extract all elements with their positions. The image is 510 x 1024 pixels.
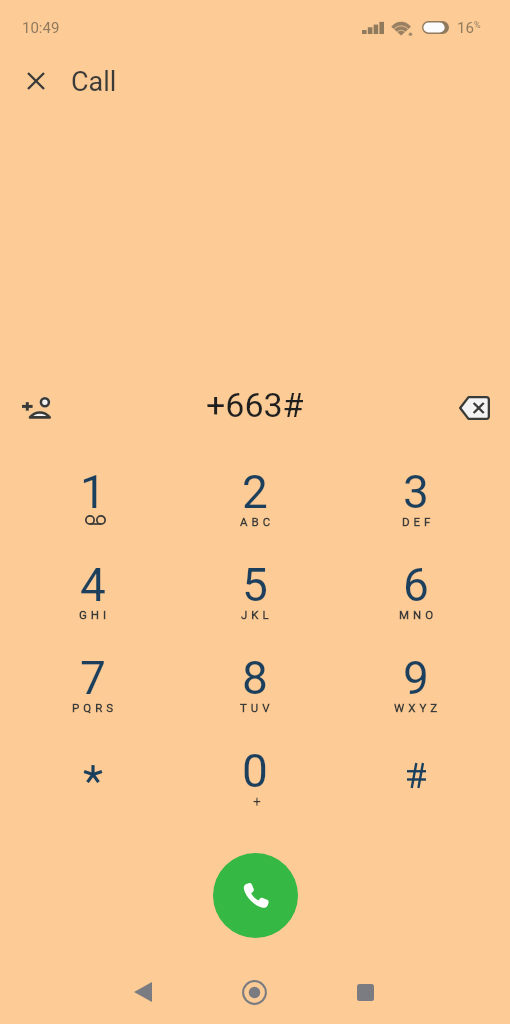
staticText: DEF	[402, 515, 435, 528]
staticText: %	[474, 20, 481, 31]
button[interactable]: Backspace	[447, 381, 501, 435]
staticText: PQRS	[72, 701, 118, 714]
button[interactable]: 3 DEF	[362, 455, 470, 547]
staticText: ABC	[240, 515, 275, 528]
staticText: Call	[71, 66, 117, 98]
button[interactable]: 2 ABC	[201, 455, 309, 547]
button[interactable]: #	[362, 734, 470, 826]
staticText: 1	[80, 465, 106, 519]
staticText: 8	[242, 651, 268, 705]
button[interactable]: 6 MNO	[362, 548, 470, 640]
staticText: MNO	[399, 608, 438, 621]
staticText: 3	[403, 465, 429, 519]
staticText: 7	[80, 651, 106, 705]
staticText: +	[253, 794, 261, 810]
staticText: 9	[403, 651, 429, 705]
button[interactable]: Recents	[335, 962, 395, 1022]
staticText: 0	[242, 744, 268, 798]
staticText: JKL	[241, 608, 273, 621]
button[interactable]: *	[39, 734, 147, 826]
staticText: 2	[242, 465, 268, 519]
staticText: 6	[403, 558, 429, 612]
button[interactable]: 1 vm	[39, 455, 147, 547]
staticText: +663#	[206, 385, 304, 425]
button[interactable]: 8 TUV	[201, 641, 309, 733]
staticText: 16	[457, 19, 474, 37]
button[interactable]: 0 +	[201, 734, 309, 826]
button[interactable]: Back	[113, 962, 173, 1022]
button[interactable]: Add contact	[9, 381, 63, 435]
staticText: 5	[242, 558, 268, 612]
button[interactable]: 9 WXYZ	[362, 641, 470, 733]
staticText: GHI	[79, 608, 111, 621]
button[interactable]: 4 GHI	[39, 548, 147, 640]
button[interactable]: Call	[213, 853, 298, 938]
staticText: 10:49	[22, 19, 60, 37]
staticText: 4	[80, 558, 106, 612]
button[interactable]: Close	[11, 56, 61, 106]
staticText: WXYZ	[394, 701, 442, 714]
button[interactable]: 5 JKL	[201, 548, 309, 640]
staticText: TUV	[240, 701, 274, 714]
button[interactable]: 7 PQRS	[39, 641, 147, 733]
button[interactable]: Home	[224, 962, 284, 1022]
